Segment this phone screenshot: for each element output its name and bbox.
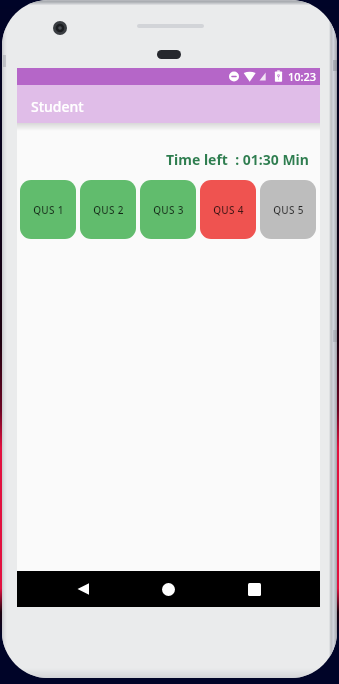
- button[interactable]: QUS 4: [200, 180, 256, 239]
- staticText: QUS 5: [273, 203, 304, 217]
- staticText: QUS 1: [33, 203, 64, 217]
- staticText: Student: [31, 97, 84, 116]
- staticText: QUS 4: [213, 203, 244, 217]
- button[interactable]: QUS 1: [20, 180, 76, 239]
- button[interactable]: QUS 5: [260, 180, 316, 239]
- staticText: Time left : 01:30 Min: [166, 150, 309, 169]
- staticText: QUS 2: [93, 203, 124, 217]
- button[interactable]: QUS 3: [140, 180, 196, 239]
- staticText: QUS 3: [153, 203, 184, 217]
- button[interactable]: QUS 2: [80, 180, 136, 239]
- button[interactable]: Recents: [228, 571, 281, 607]
- button[interactable]: Home: [142, 571, 195, 607]
- button[interactable]: Back: [56, 571, 109, 607]
- staticText: 10:23: [288, 69, 317, 84]
